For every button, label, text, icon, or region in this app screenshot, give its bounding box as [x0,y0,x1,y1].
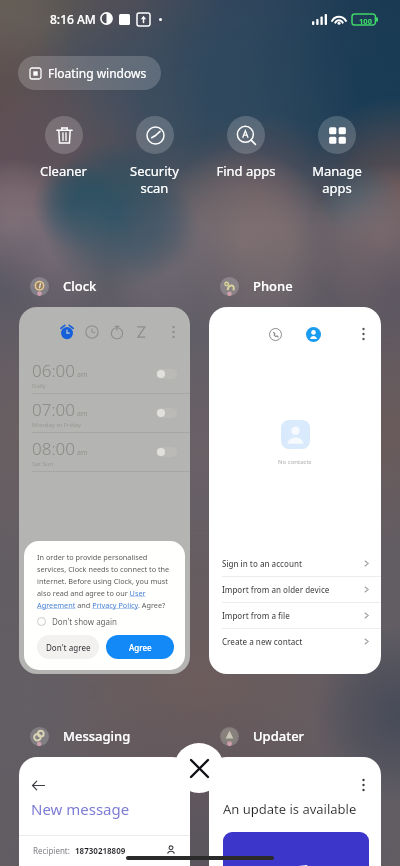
staticText: Create a new contact [222,636,303,647]
button[interactable]: Cleaner [18,116,109,180]
staticText: am [77,370,88,380]
button[interactable]: 06:00 [19,307,190,674]
button[interactable]: More options [209,307,381,674]
button[interactable]: Sign in to an account [222,551,370,576]
staticText: Don't agree [46,642,91,653]
staticText: Sat Sun [32,460,54,468]
staticText: Agree [129,642,152,653]
other: More options [362,779,365,791]
staticText: No contacts [278,458,312,466]
button[interactable]: Close all [174,743,224,793]
staticText: am [77,448,88,458]
button[interactable]: Manage apps [291,116,382,197]
staticText: In order to provide personalised service… [37,552,174,610]
staticText: Messaging [63,727,131,745]
staticText: Import from a file [222,610,290,621]
button[interactable]: Create a new contact [222,629,370,654]
staticText: 07:00 [32,398,75,421]
staticText: 08:00 [32,437,75,460]
staticText: Don't show again [52,616,118,627]
staticText: New message [31,799,130,819]
other: More options [362,328,365,340]
button[interactable]: Back [19,757,190,866]
button[interactable]: Import from an older device [222,577,370,602]
staticText: 06:00 [32,359,75,382]
staticText: Updater [253,727,305,745]
button[interactable]: 07:00 [32,394,177,432]
staticText: Security scan [130,162,179,197]
staticText: Find apps [216,162,276,180]
button[interactable]: Floating windows [18,56,161,90]
staticText: Clock [63,277,97,295]
button[interactable]: Import from a file [222,603,370,628]
staticText: Monday to Friday [32,421,82,429]
button[interactable]: Don't show again [37,616,118,627]
staticText: An update is available [223,800,357,818]
staticText: Recipient: [33,845,70,856]
staticText: Cleaner [40,162,87,180]
staticText: 8:16 AM [50,11,96,27]
staticText: 18730218809 [75,845,126,856]
button[interactable]: 06:00 [32,355,177,393]
staticText: Sign in to an account [222,558,302,569]
staticText: 100 [355,16,376,26]
staticText: Manage apps [312,162,362,197]
button[interactable]: Agree [106,635,174,659]
button[interactable]: More options [209,757,381,866]
other: Back [32,779,45,792]
staticText: Import from an older device [222,584,330,595]
button[interactable]: Find apps [200,116,291,180]
staticText: Daily [32,382,46,390]
button[interactable]: Security scan [109,116,200,197]
button[interactable]: 08:00 [32,433,177,471]
button[interactable]: Don't agree [37,635,99,659]
staticText: Floating windows [48,65,147,81]
staticText: am [77,409,88,419]
staticText: Phone [253,277,293,295]
